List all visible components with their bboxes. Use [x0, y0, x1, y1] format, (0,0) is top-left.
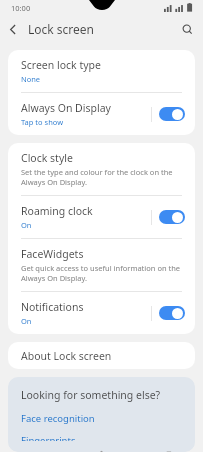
button[interactable]: Notifications	[8, 292, 195, 334]
staticText: Tap to show	[21, 117, 64, 127]
button[interactable]: Face recognition	[21, 412, 95, 425]
staticText: On	[21, 220, 32, 230]
button[interactable]: FaceWidgets	[8, 239, 195, 291]
button[interactable]: Fingerprints	[21, 434, 76, 441]
button[interactable]: Toggle	[159, 306, 185, 320]
staticText: Roaming clock	[21, 204, 93, 218]
staticText: None	[21, 74, 41, 84]
button[interactable]: Always On Display	[8, 93, 195, 135]
button[interactable]: About Lock screen	[8, 342, 195, 369]
staticText: Clock style	[21, 151, 73, 165]
staticText: Screen lock type	[21, 58, 101, 72]
staticText: Always On Display	[21, 101, 111, 115]
button[interactable]: Toggle	[159, 107, 185, 121]
staticText: On	[21, 316, 32, 326]
button[interactable]: Clock style	[8, 143, 195, 195]
button[interactable]: Back	[0, 16, 26, 42]
button[interactable]: Roaming clock	[8, 196, 195, 238]
staticText: 10:00	[11, 3, 31, 13]
staticText: Face recognition	[21, 412, 95, 425]
staticText: Notifications	[21, 300, 84, 314]
staticText: About Lock screen	[21, 349, 112, 363]
staticText: Set the type and colour for the clock on…	[21, 167, 187, 187]
staticText: Get quick access to useful information o…	[21, 263, 187, 283]
button[interactable]: Screen lock type	[8, 50, 195, 92]
staticText: FaceWidgets	[21, 247, 84, 261]
staticText: Lock screen	[28, 21, 95, 37]
staticText: Looking for something else?	[21, 388, 161, 402]
button[interactable]: Toggle	[159, 210, 185, 224]
button[interactable]: Search	[174, 16, 200, 42]
staticText: Fingerprints	[21, 434, 76, 441]
